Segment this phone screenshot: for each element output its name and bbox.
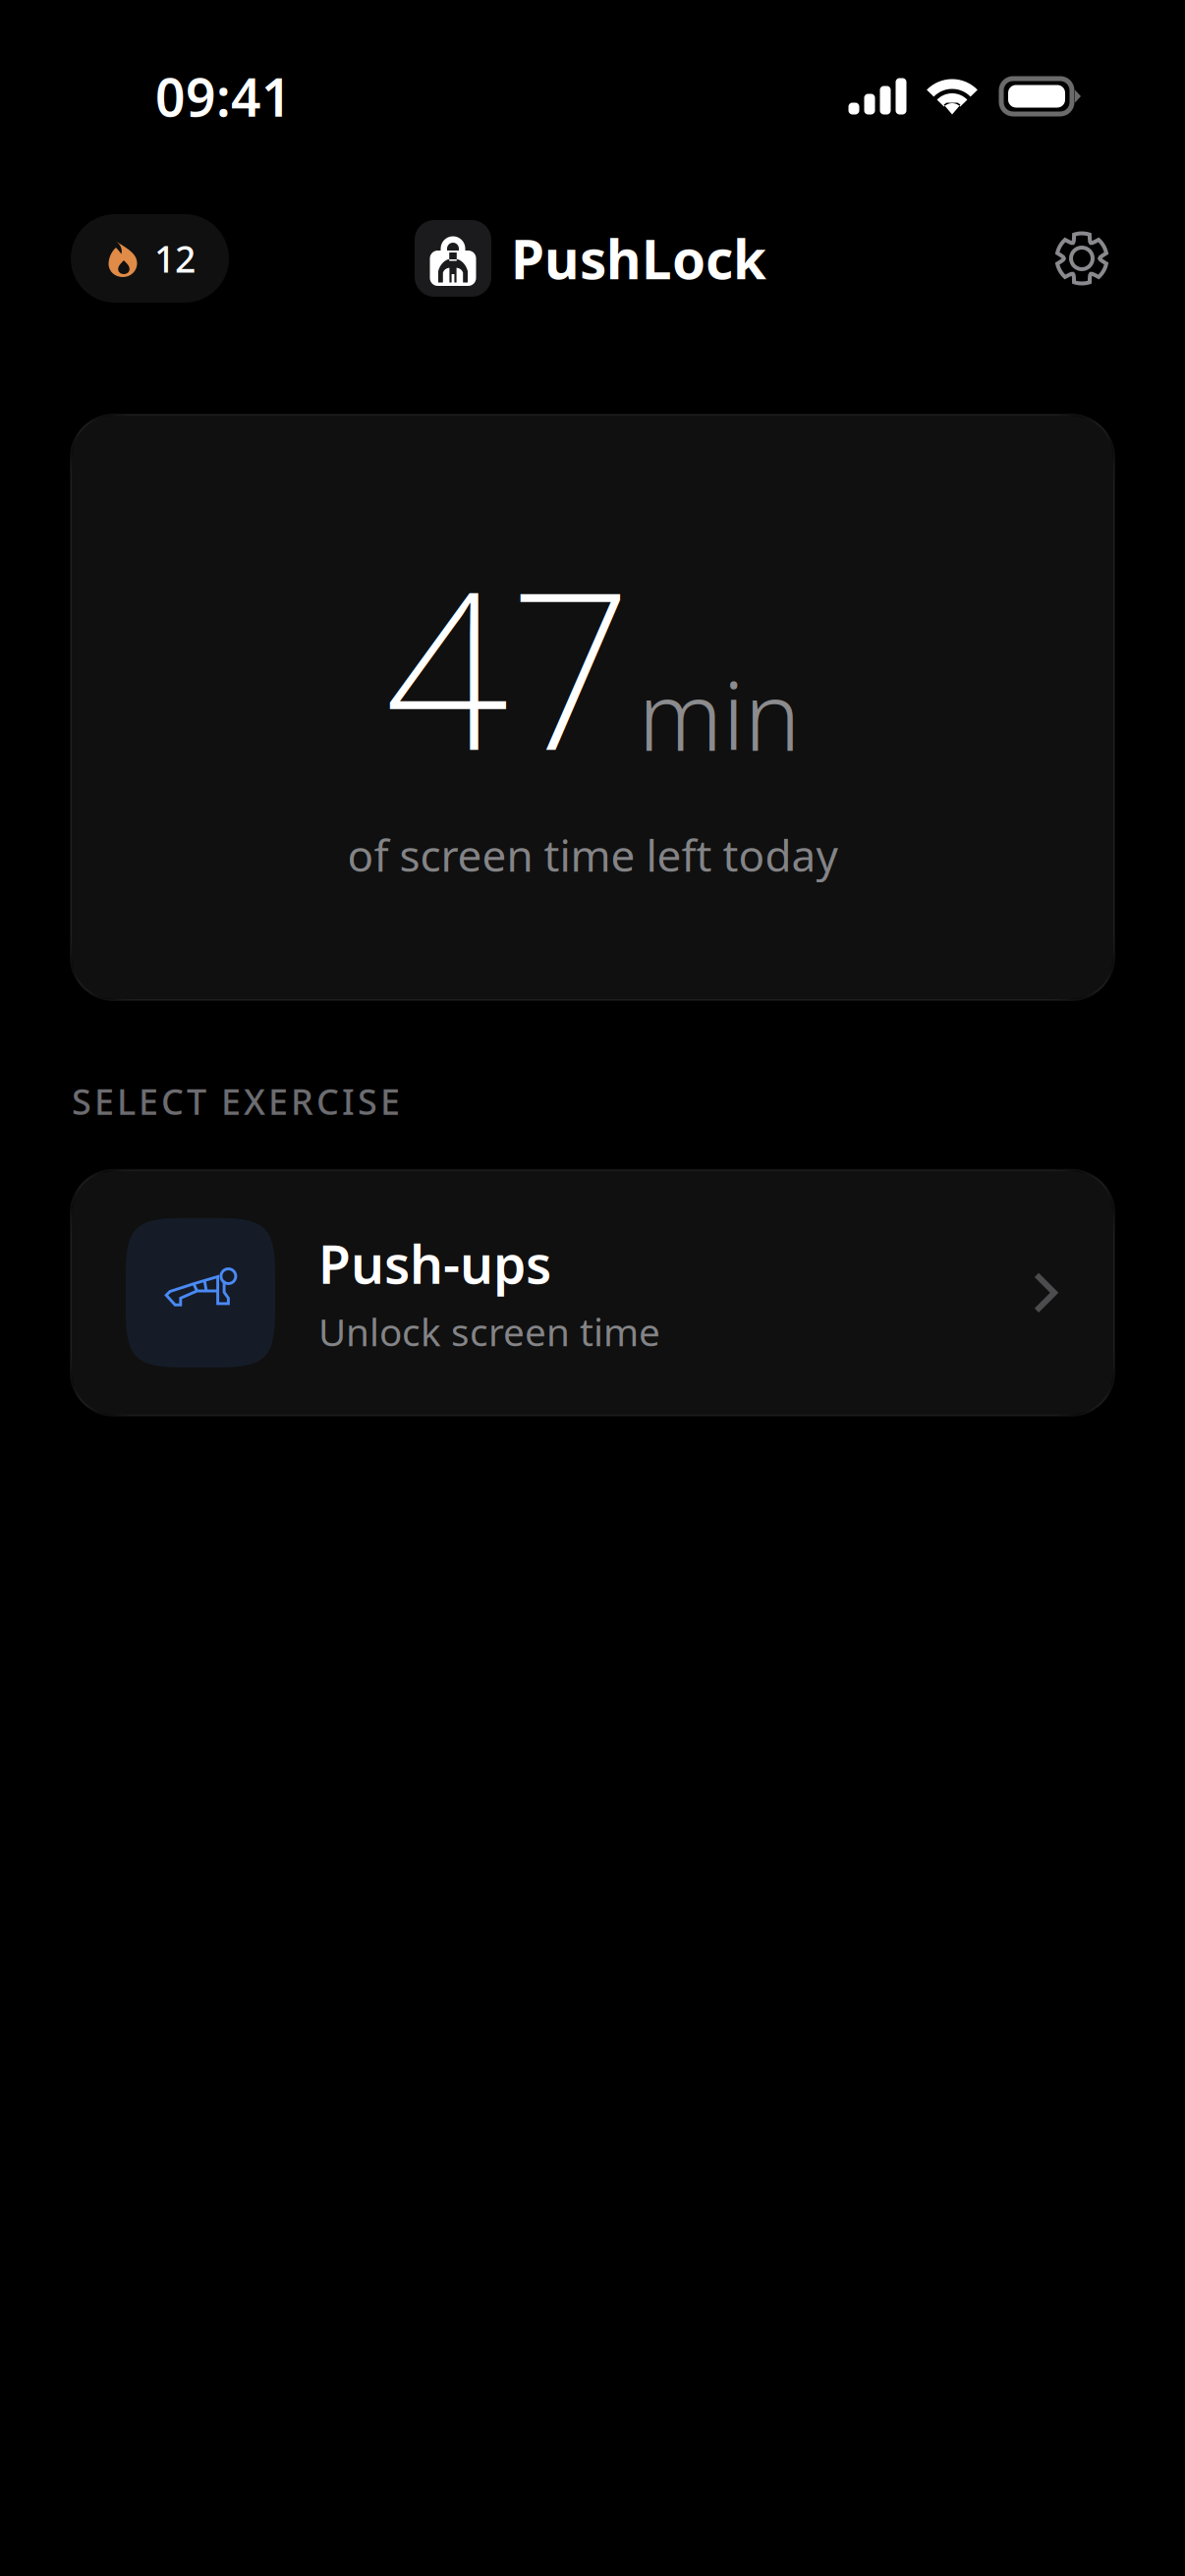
button[interactable]: 12 xyxy=(71,214,229,303)
staticText: SELECT EXERCISE xyxy=(72,1078,400,1125)
staticText: 09:41 xyxy=(155,62,292,131)
button[interactable]: Push-ups xyxy=(71,1170,1114,1416)
button[interactable]: Settings xyxy=(1053,230,1110,287)
staticText: min xyxy=(638,651,800,776)
staticText: 12 xyxy=(154,234,196,283)
staticText: of screen time left today xyxy=(347,826,838,884)
staticText: Push-ups xyxy=(318,1229,551,1298)
staticText: 47 xyxy=(385,522,632,810)
staticText: Unlock screen time xyxy=(318,1306,660,1357)
staticText: PushLock xyxy=(511,223,766,294)
